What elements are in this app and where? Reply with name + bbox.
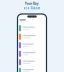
button[interactable]	[17, 49, 46, 58]
button[interactable]	[17, 66, 46, 72]
staticText: Your Day	[25, 2, 39, 6]
button[interactable]	[17, 32, 46, 41]
button[interactable]	[17, 58, 46, 66]
staticText: at a Glance	[23, 6, 40, 10]
button[interactable]	[17, 41, 46, 49]
button[interactable]	[17, 24, 46, 32]
